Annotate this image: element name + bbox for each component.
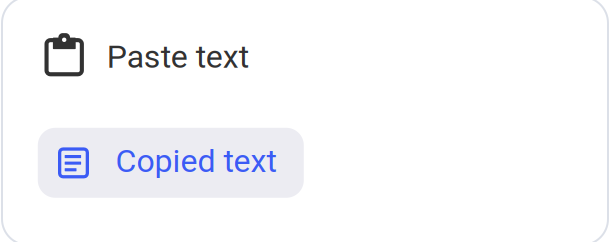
button[interactable]: Paste text [38,22,304,88]
staticText: Copied text [116,142,277,180]
button[interactable]: Copied text [38,128,304,198]
staticText: Paste text [107,38,249,75]
